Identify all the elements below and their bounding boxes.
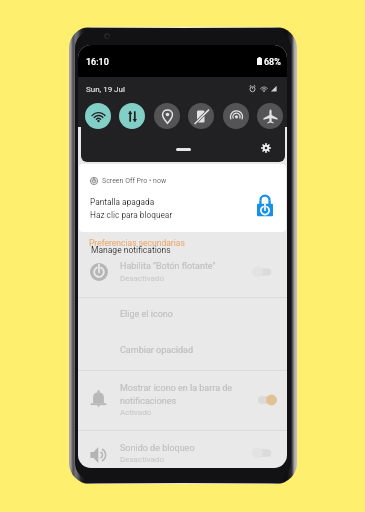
staticText: Screen Off Pro • now xyxy=(102,177,167,185)
button[interactable] xyxy=(78,370,287,430)
staticText: Mostrar icono en la barra de notificacio… xyxy=(120,383,233,406)
staticText: Manage notifications xyxy=(91,245,171,255)
staticText: Activado xyxy=(120,408,152,417)
staticText: Sun, 19 Jul xyxy=(86,85,125,94)
button[interactable]: Quick setting xyxy=(85,103,111,129)
button[interactable]: Screen Off Pro • now xyxy=(79,164,286,232)
button[interactable] xyxy=(78,430,287,468)
button[interactable]: Toggle off xyxy=(252,265,274,279)
button[interactable]: Quick setting xyxy=(223,103,249,129)
button[interactable]: Quick setting xyxy=(154,103,180,129)
staticText: Desactivado xyxy=(120,274,164,283)
staticText: 16:10 xyxy=(86,57,109,68)
staticText: Habilita "Botón flotante" xyxy=(120,261,216,272)
staticText: Preferencias secundarias xyxy=(89,238,185,248)
staticText: Desactivado xyxy=(120,455,164,464)
button[interactable] xyxy=(78,254,287,297)
button[interactable]: Quick setting xyxy=(119,103,145,129)
staticText: Sonido de bloqueo xyxy=(120,443,195,454)
staticText: Elige el icono xyxy=(120,309,173,320)
button[interactable] xyxy=(78,333,287,370)
staticText: Pantalla apagada xyxy=(90,197,155,207)
button[interactable] xyxy=(78,297,287,333)
button[interactable]: Quick setting xyxy=(188,103,214,129)
button[interactable]: Settings xyxy=(261,143,271,153)
button[interactable]: Toggle off xyxy=(252,446,274,460)
staticText: 68% xyxy=(264,57,281,68)
staticText: Cambiar opacidad xyxy=(120,345,194,356)
button[interactable]: Quick setting xyxy=(257,103,283,129)
staticText: Haz clic para bloquear xyxy=(90,210,173,220)
button[interactable]: Toggle on xyxy=(255,393,277,407)
